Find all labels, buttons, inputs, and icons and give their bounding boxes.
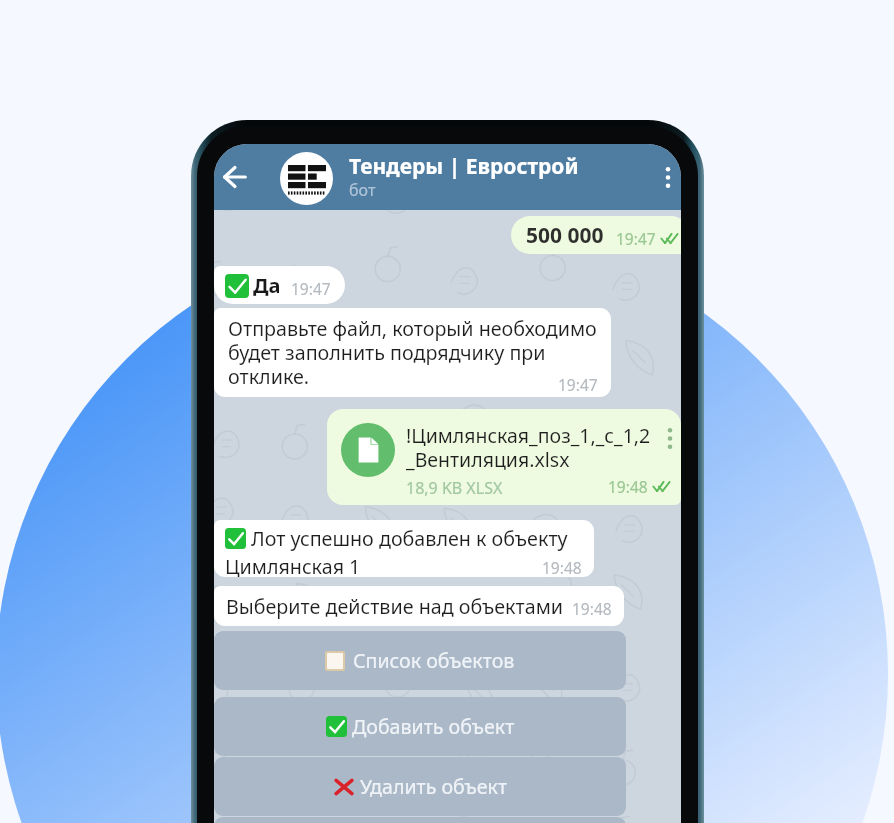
staticText: 500 000 <box>526 221 604 250</box>
staticText: бот <box>349 179 376 201</box>
button[interactable]: More options <box>655 150 681 204</box>
staticText: Добавить объект <box>352 713 515 740</box>
staticText: Список объектов <box>353 647 515 674</box>
staticText: !Цимлянская_поз_1,_с_1,2 _Вентиляция.xls… <box>406 422 651 473</box>
button[interactable]: 500 000 <box>511 216 681 254</box>
staticText: 19:48 <box>608 476 648 497</box>
staticText: Удалить объект <box>360 773 508 800</box>
button[interactable]: Выберите действие над объектами <box>214 586 624 626</box>
button[interactable]: Лот успешно добавлен к объекту <box>214 520 594 577</box>
button[interactable]: Добавить объект <box>214 697 626 756</box>
staticText: 19:47 <box>616 228 656 249</box>
staticText: Лот успешно добавлен к объекту <box>251 525 568 552</box>
button[interactable]: Back <box>214 146 257 208</box>
staticText: 19:47 <box>291 278 331 299</box>
staticText: Отправьте файл, который необходимо будет… <box>228 315 597 390</box>
button[interactable]: Отправьте файл, который необходимо будет… <box>214 308 611 397</box>
staticText: 19:47 <box>558 374 598 395</box>
staticText: 18,9 KB XLSX <box>406 477 503 499</box>
staticText: Цимлянская 1 <box>225 553 361 577</box>
button[interactable]: File options <box>662 423 678 453</box>
button[interactable]: Удалить объект <box>214 757 626 816</box>
button[interactable]: !Цимлянская_поз_1,_с_1,2 _Вентиляция.xls… <box>327 409 681 505</box>
staticText: Тендеры | Еврострой <box>349 152 579 181</box>
staticText: 19:48 <box>572 598 612 619</box>
staticText: Выберите действие над объектами <box>226 593 564 620</box>
button[interactable]: Список объектов <box>214 631 626 690</box>
button[interactable] <box>214 817 626 823</box>
staticText: Да <box>253 272 281 299</box>
button[interactable]: Да <box>214 266 345 304</box>
staticText: 19:48 <box>542 557 582 577</box>
